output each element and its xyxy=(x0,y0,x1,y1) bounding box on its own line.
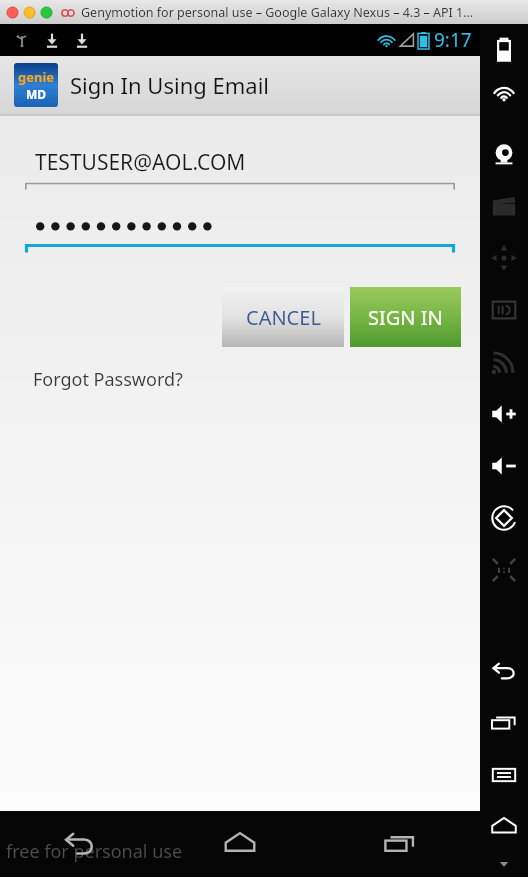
button[interactable]: Camera xyxy=(480,128,528,180)
staticText: Forgot Password? xyxy=(33,367,183,392)
button[interactable]: Identifiers xyxy=(480,284,528,336)
staticText: MD xyxy=(26,86,47,102)
staticText: SIGN IN xyxy=(368,304,443,331)
staticText: TESTUSER@AOL.COM xyxy=(35,148,246,177)
button[interactable]: Forgot Password? xyxy=(25,361,191,398)
button[interactable]: Volume down xyxy=(480,440,528,492)
button[interactable]: Back xyxy=(0,811,160,877)
button[interactable]: Battery xyxy=(480,24,528,76)
button[interactable]: Rotate xyxy=(480,492,528,544)
button[interactable]: CANCEL xyxy=(222,287,344,347)
button[interactable]: Recent apps xyxy=(480,697,528,749)
staticText: 9:17 xyxy=(434,27,472,53)
staticText: genie xyxy=(18,68,55,86)
button[interactable]: Back xyxy=(480,645,528,697)
staticText: free for personal use xyxy=(6,839,183,864)
button[interactable]: Network xyxy=(480,336,528,388)
button[interactable]: Scale one to one xyxy=(480,544,528,596)
button[interactable]: Menu xyxy=(480,749,528,801)
button[interactable] xyxy=(25,204,455,252)
button[interactable]: GPS xyxy=(480,76,528,128)
button[interactable]: Screencast xyxy=(480,180,528,232)
staticText: CANCEL xyxy=(246,304,321,331)
button[interactable]: SIGN IN xyxy=(350,287,461,347)
staticText: Genymotion for personal use – Google Gal… xyxy=(81,4,474,21)
button[interactable]: Home xyxy=(160,811,320,877)
button[interactable]: Volume up xyxy=(480,388,528,440)
staticText: Sign In Using Email xyxy=(70,70,270,100)
button[interactable]: Recent apps xyxy=(320,811,480,877)
button[interactable]: Home xyxy=(480,801,528,853)
button[interactable]: Accelerometer xyxy=(480,232,528,284)
button[interactable]: TESTUSER@AOL.COM xyxy=(25,142,455,190)
